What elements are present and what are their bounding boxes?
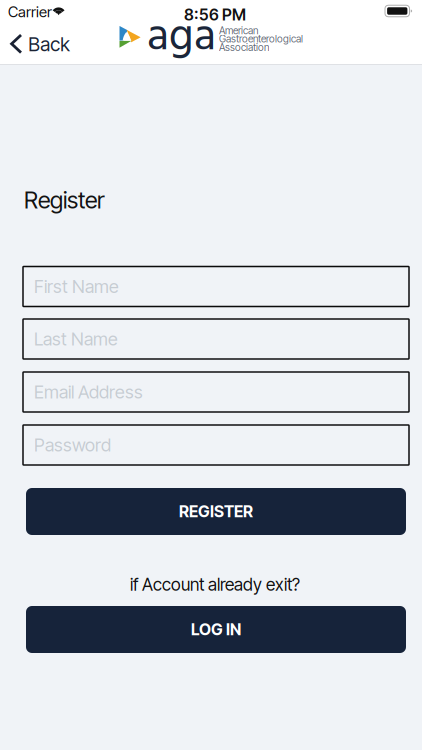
staticText: Association [219, 41, 269, 53]
staticText: First Name [34, 276, 119, 297]
button[interactable]: REGISTER [26, 488, 406, 535]
staticText: REGISTER [179, 502, 253, 521]
staticText: Password [34, 434, 111, 456]
staticText: Email Address [34, 381, 143, 403]
button[interactable]: Back [0, 0, 82, 56]
staticText: if Account already exit? [130, 574, 300, 595]
staticText: 8:56 PM [184, 5, 246, 24]
staticText: Register [24, 186, 105, 214]
staticText: Gastroenterological [219, 33, 303, 45]
button[interactable]: LOG IN [26, 606, 406, 653]
staticText: Back [28, 32, 70, 56]
staticText: LOG IN [191, 620, 241, 639]
staticText: aga [147, 1, 216, 74]
staticText: Last Name [34, 328, 118, 350]
staticText: American [219, 24, 258, 37]
staticText: Carrier [8, 3, 52, 21]
